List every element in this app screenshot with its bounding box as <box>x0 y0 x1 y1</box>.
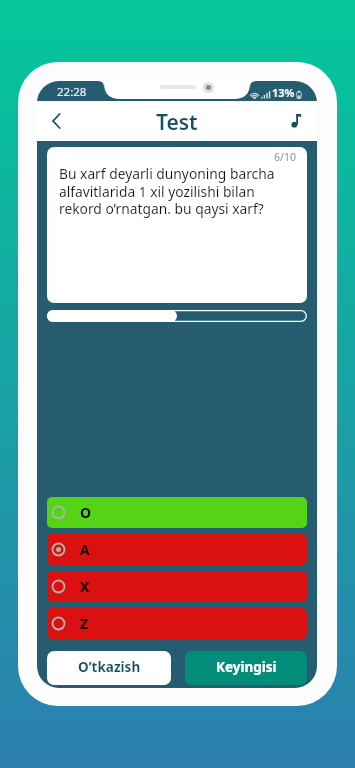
staticText: A <box>80 540 90 559</box>
staticText: Z <box>80 614 89 633</box>
button[interactable]: O’tkazish <box>47 651 171 685</box>
staticText: Keyingisi <box>216 658 277 676</box>
staticText: 6/10 <box>274 150 296 164</box>
staticText: O’tkazish <box>78 658 141 676</box>
staticText: 13% <box>272 85 295 100</box>
button[interactable]: Z <box>47 608 307 639</box>
staticText: Test <box>156 108 198 137</box>
button[interactable]: Keyingisi <box>185 651 307 685</box>
staticText: 22:28 <box>57 84 87 100</box>
button[interactable]: A <box>47 534 307 565</box>
button[interactable]: Music <box>280 105 312 137</box>
staticText: O <box>80 503 92 522</box>
staticText: Bu xarf deyarli dunyoning barcha alfavit… <box>59 164 282 218</box>
staticText: X <box>80 577 90 596</box>
button[interactable]: X <box>47 571 307 602</box>
button[interactable]: Back <box>40 105 72 137</box>
button[interactable]: O <box>47 497 307 528</box>
